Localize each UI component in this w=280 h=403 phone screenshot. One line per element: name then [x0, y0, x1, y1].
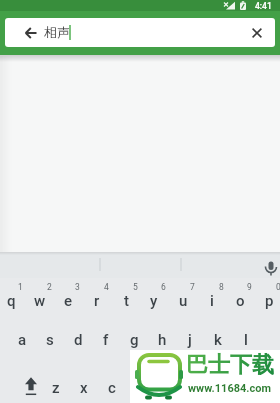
staticText: g: [130, 331, 139, 349]
staticText: c: [108, 379, 116, 397]
staticText: 2: [47, 282, 52, 292]
button[interactable]: o: [226, 288, 254, 314]
button[interactable]: m: [210, 375, 238, 401]
staticText: n: [192, 379, 201, 397]
staticText: 7: [190, 282, 195, 292]
staticText: 9: [247, 282, 252, 292]
staticText: 0: [276, 282, 280, 292]
button[interactable]: v: [126, 375, 154, 401]
staticText: s: [46, 331, 54, 349]
button[interactable]: x: [70, 375, 98, 401]
button[interactable]: s: [36, 327, 64, 353]
staticText: r: [94, 292, 100, 310]
button[interactable]: f: [92, 327, 120, 353]
staticText: 巴士下载: [186, 351, 274, 379]
button[interactable]: b: [154, 375, 182, 401]
button[interactable]: u: [169, 288, 197, 314]
staticText: t: [124, 292, 129, 310]
staticText: a: [18, 331, 27, 349]
staticText: 1: [18, 282, 23, 292]
staticText: e: [64, 292, 73, 310]
button[interactable]: y: [140, 288, 168, 314]
staticText: u: [179, 292, 188, 310]
staticText: i: [210, 292, 214, 310]
staticText: o: [236, 292, 245, 310]
staticText: w: [34, 292, 46, 310]
button[interactable]: i: [198, 288, 226, 314]
button[interactable]: [19, 20, 43, 45]
staticText: z: [52, 379, 60, 397]
staticText: 6: [161, 282, 166, 292]
button[interactable]: [259, 260, 280, 278]
staticText: 8: [219, 282, 224, 292]
button[interactable]: w: [26, 288, 54, 314]
staticText: www.11684.com: [188, 382, 272, 395]
button[interactable]: 相声: [5, 18, 275, 47]
button[interactable]: r: [83, 288, 111, 314]
button[interactable]: [244, 20, 269, 45]
button[interactable]: a: [8, 327, 36, 353]
staticText: j: [188, 331, 192, 349]
staticText: v: [136, 379, 144, 397]
staticText: 4: [104, 282, 109, 292]
button[interactable]: l: [232, 327, 260, 353]
button[interactable]: q: [0, 288, 25, 314]
button[interactable]: p: [255, 288, 280, 314]
button[interactable]: d: [64, 327, 92, 353]
staticText: p: [265, 292, 274, 310]
button[interactable]: t: [112, 288, 140, 314]
staticText: 3: [75, 282, 80, 292]
button[interactable]: c: [98, 375, 126, 401]
staticText: 相声: [44, 24, 70, 40]
button[interactable]: g: [120, 327, 148, 353]
button[interactable]: e: [54, 288, 82, 314]
button[interactable]: k: [204, 327, 232, 353]
staticText: l: [244, 331, 248, 349]
button[interactable]: h: [148, 327, 176, 353]
button[interactable]: j: [176, 327, 204, 353]
staticText: f: [103, 331, 109, 349]
staticText: h: [158, 331, 167, 349]
button[interactable]: n: [182, 375, 210, 401]
staticText: d: [74, 331, 83, 349]
staticText: y: [150, 292, 158, 310]
staticText: k: [214, 331, 222, 349]
button[interactable]: [14, 374, 48, 402]
button[interactable]: z: [42, 375, 70, 401]
staticText: 5: [133, 282, 138, 292]
staticText: x: [80, 379, 88, 397]
staticText: m: [217, 379, 231, 397]
staticText: b: [164, 379, 173, 397]
staticText: q: [7, 292, 16, 310]
staticText: 4:41: [255, 1, 272, 11]
